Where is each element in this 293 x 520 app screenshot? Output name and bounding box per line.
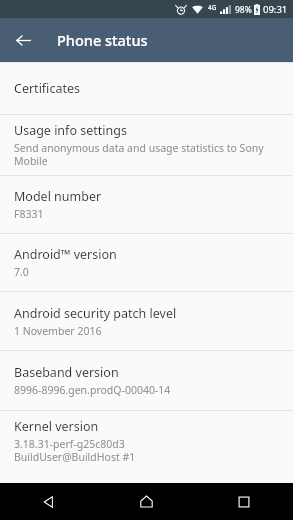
button[interactable]: Android™ version (0, 234, 293, 291)
button[interactable]: Recent apps (195, 483, 293, 520)
button[interactable]: Android security patch level (0, 292, 293, 350)
staticText: Phone status (57, 30, 148, 50)
staticText: 3.18.31-perf-g25c80d3 BuildUser@BuildHos… (14, 437, 136, 464)
staticText: Android security patch level (14, 305, 177, 322)
staticText: Usage info settings (14, 122, 127, 139)
staticText: F8331 (14, 207, 44, 221)
button[interactable]: Back (0, 483, 97, 520)
staticText: 8996-8996.gen.prodQ-00040-14 (14, 383, 171, 397)
staticText: Kernel version (14, 418, 99, 435)
button[interactable]: Home (97, 483, 195, 520)
staticText: Send anonymous data and usage statistics… (14, 141, 264, 168)
button[interactable]: Model number (0, 176, 293, 233)
staticText: 09:31 (263, 3, 288, 16)
staticText: 4G (208, 3, 217, 12)
staticText: Model number (14, 188, 102, 205)
staticText: Certificates (14, 80, 80, 97)
staticText: 98% (235, 4, 252, 16)
staticText: Android™ version (14, 246, 117, 263)
staticText: 7.0 (14, 265, 29, 279)
button[interactable]: Navigate up (10, 27, 36, 53)
button[interactable]: Kernel version (0, 411, 293, 471)
button[interactable]: Usage info settings (0, 115, 293, 175)
button[interactable]: Baseband version (0, 351, 293, 410)
staticText: 1 November 2016 (14, 324, 102, 338)
staticText: Baseband version (14, 364, 119, 381)
button[interactable]: Certificates (0, 63, 293, 114)
